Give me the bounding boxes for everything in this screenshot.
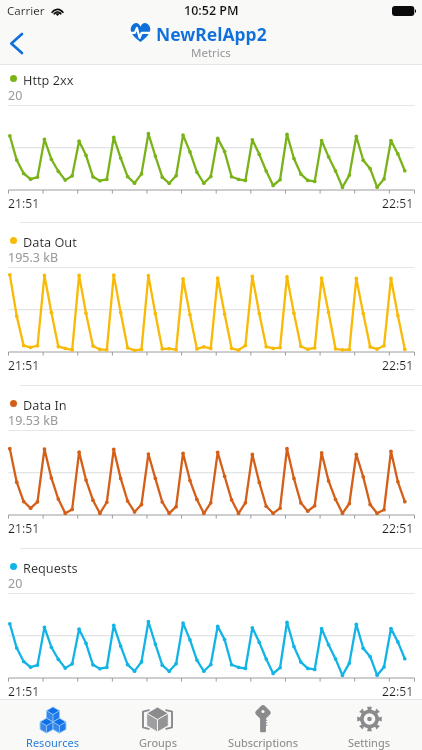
- button[interactable]: Subscriptions: [210, 700, 316, 750]
- staticText: Subscriptions: [228, 735, 298, 750]
- staticText: NewRelApp2: [156, 22, 267, 46]
- button[interactable]: Groups: [105, 700, 210, 750]
- staticText: 22:51: [382, 195, 414, 212]
- staticText: 19.53 kB: [8, 412, 59, 429]
- button[interactable]: Back: [0, 21, 40, 65]
- staticText: 21:51: [8, 520, 40, 537]
- staticText: 20: [8, 575, 23, 592]
- staticText: 195.3 kB: [8, 249, 59, 266]
- staticText: 22:51: [382, 520, 414, 537]
- button[interactable]: Settings: [316, 700, 422, 750]
- staticText: Requests: [23, 559, 78, 576]
- staticText: Groups: [139, 735, 177, 750]
- staticText: 21:51: [8, 357, 40, 374]
- staticText: Metrics: [191, 45, 231, 61]
- staticText: Http 2xx: [23, 71, 74, 88]
- staticText: 21:51: [8, 195, 40, 212]
- staticText: Carrier: [7, 3, 45, 19]
- staticText: Data In: [23, 396, 67, 413]
- staticText: 22:51: [382, 357, 414, 374]
- staticText: 10:52 PM: [184, 2, 239, 19]
- staticText: 21:51: [8, 683, 40, 700]
- staticText: Data Out: [23, 233, 77, 250]
- staticText: 22:51: [382, 683, 414, 700]
- button[interactable]: Resources: [0, 700, 105, 750]
- staticText: Resources: [26, 735, 79, 750]
- staticText: Settings: [348, 735, 390, 750]
- staticText: 20: [8, 87, 23, 104]
